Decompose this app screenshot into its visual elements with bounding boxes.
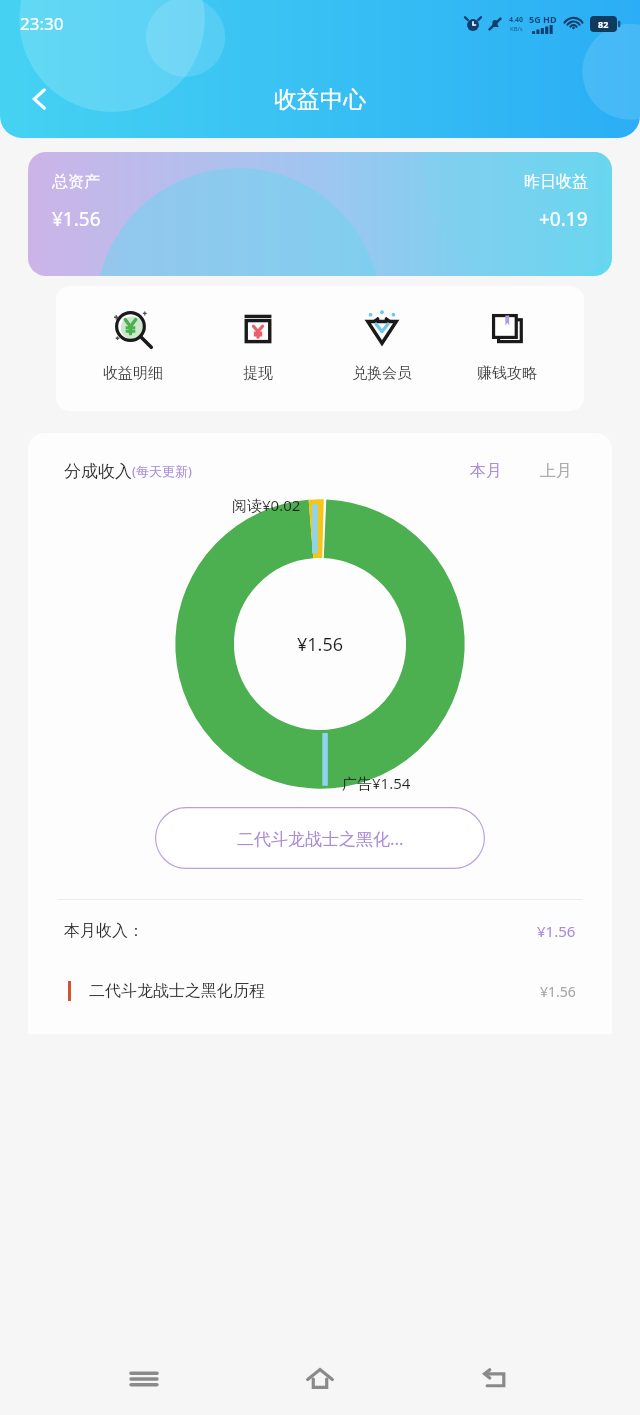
staticText: 收益中心	[274, 85, 366, 114]
button[interactable]: Back	[14, 73, 66, 125]
button[interactable]: 二代斗龙战士之黑化历程	[28, 962, 612, 1020]
staticText: 阅读¥0.02	[232, 495, 301, 515]
staticText: 分成收入	[64, 461, 132, 482]
staticText: 4.40	[509, 15, 523, 25]
button[interactable]: 本月	[464, 457, 508, 485]
staticText: ¥1.56	[297, 632, 344, 657]
staticText: 本月	[470, 461, 502, 481]
staticText: 上月	[540, 461, 572, 481]
staticText: ¥1.56	[52, 206, 101, 232]
button[interactable]: Back	[464, 1347, 528, 1411]
button[interactable]: 总资产	[28, 152, 612, 276]
staticText: ¥1.56	[537, 921, 576, 941]
staticText: 二代斗龙战士之黑化...	[237, 827, 404, 850]
button[interactable]: 上月	[534, 457, 578, 485]
staticText: 广告¥1.54	[342, 773, 411, 793]
staticText: 本月收入：	[64, 921, 144, 941]
staticText: 二代斗龙战士之黑化历程	[89, 981, 265, 1001]
button[interactable]: Home	[288, 1347, 352, 1411]
staticText: 昨日收益	[524, 172, 588, 192]
button[interactable]: 兑换会员	[334, 306, 430, 385]
staticText: 收益明细	[103, 364, 163, 383]
staticText: (每天更新)	[132, 462, 192, 480]
staticText: 23:30	[20, 12, 64, 35]
staticText: 5G HD	[529, 13, 557, 25]
staticText: 提现	[243, 364, 273, 383]
staticText: +0.19	[539, 206, 588, 232]
button[interactable]: 收益明细	[85, 306, 181, 385]
staticText: KB/s	[510, 25, 523, 33]
button[interactable]: 赚钱攻略	[459, 306, 555, 385]
staticText: 82	[598, 18, 609, 30]
button[interactable]: 二代斗龙战士之黑化...	[155, 807, 485, 869]
staticText: 赚钱攻略	[477, 364, 537, 383]
button[interactable]: Recent apps	[112, 1347, 176, 1411]
staticText: 兑换会员	[352, 364, 412, 383]
staticText: 总资产	[52, 172, 100, 192]
button[interactable]: 提现	[210, 306, 306, 385]
staticText: ¥1.56	[540, 982, 576, 1001]
